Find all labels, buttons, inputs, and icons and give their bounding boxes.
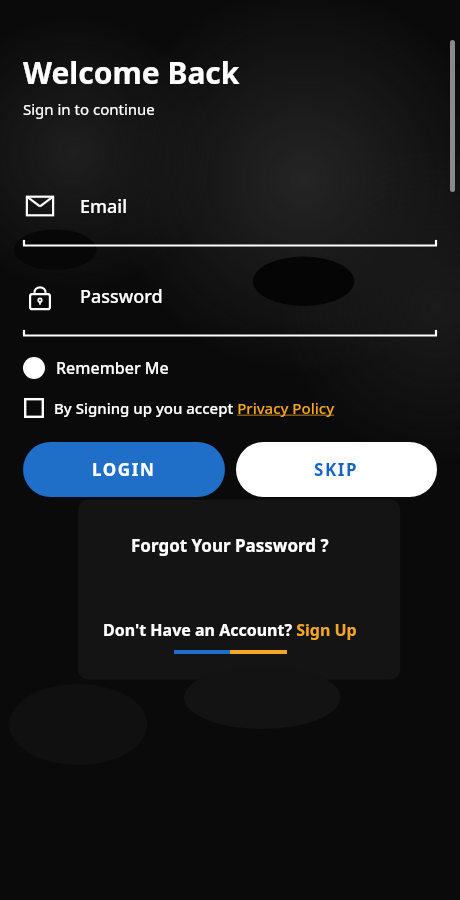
staticText: Remember Me [56, 357, 169, 379]
staticText: Password [80, 284, 163, 309]
other: Password [24, 281, 56, 311]
staticText: Email [80, 194, 128, 219]
button[interactable]: Remember Me [23, 357, 169, 379]
button[interactable]: SKIP [236, 442, 437, 497]
staticText: By Signing up you accept Privacy Policy [54, 398, 335, 418]
staticText: Welcome Back [23, 52, 240, 93]
staticText: Sign in to continue [23, 99, 155, 119]
button[interactable]: Forgot Your Password ? [131, 534, 329, 557]
staticText: LOGIN [92, 458, 156, 481]
staticText: SKIP [314, 458, 359, 481]
button[interactable]: Don't Have an Account? Sign Up [103, 619, 357, 641]
button[interactable]: By Signing up you accept Privacy Policy [24, 398, 335, 418]
button[interactable]: LOGIN [23, 442, 225, 497]
other: Email [24, 191, 56, 221]
